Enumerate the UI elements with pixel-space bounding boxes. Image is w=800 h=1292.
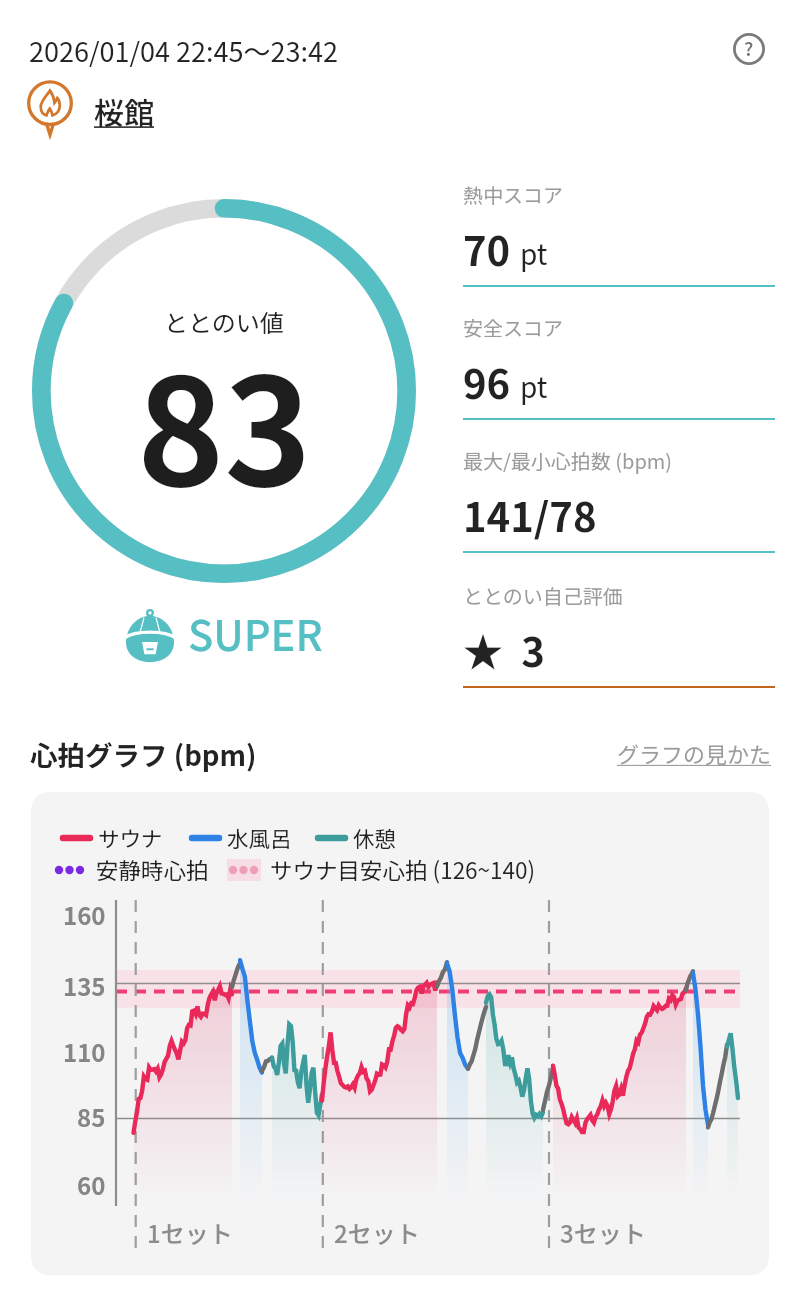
staticText: 70 <box>463 220 511 278</box>
staticText: 熱中スコア <box>463 180 563 209</box>
staticText: ? <box>744 34 754 62</box>
button[interactable]: 桜館 <box>20 78 154 138</box>
button[interactable]: Help <box>725 25 773 73</box>
staticText: pt <box>520 366 548 407</box>
staticText: 135 <box>63 968 106 1003</box>
staticText: サウナ <box>98 822 163 853</box>
staticText: 心拍グラフ (bpm) <box>30 734 257 774</box>
staticText: 110 <box>63 1034 106 1069</box>
staticText: 1セット <box>147 1215 233 1250</box>
staticText: ととのい自己評価 <box>463 581 623 610</box>
staticText: 160 <box>63 897 106 932</box>
button[interactable]: グラフの見かた <box>617 737 772 769</box>
staticText: SUPER <box>188 603 323 663</box>
staticText: 最大/最小心拍数 (bpm) <box>463 446 673 475</box>
staticText: グラフの見かた <box>617 737 772 769</box>
staticText: 2026/01/04 22:45〜23:42 <box>29 31 338 70</box>
staticText: 水風呂 <box>227 822 292 853</box>
staticText: 85 <box>77 1099 106 1134</box>
staticText: ととのい値 <box>164 304 284 339</box>
staticText: 安全スコア <box>463 313 563 342</box>
staticText: 83 <box>137 314 312 528</box>
staticText: ★ 3 <box>463 621 545 679</box>
staticText: 安静時心拍 <box>96 853 209 886</box>
staticText: pt <box>520 233 548 274</box>
staticText: サウナ目安心拍 (126~140) <box>270 853 536 886</box>
staticText: 桜館 <box>94 89 154 132</box>
staticText: 休憩 <box>353 822 397 853</box>
staticText: 96 <box>463 353 511 411</box>
staticText: 141/78 <box>463 486 597 544</box>
staticText: 3セット <box>560 1215 646 1250</box>
staticText: 2セット <box>334 1215 420 1250</box>
staticText: 60 <box>77 1167 106 1202</box>
